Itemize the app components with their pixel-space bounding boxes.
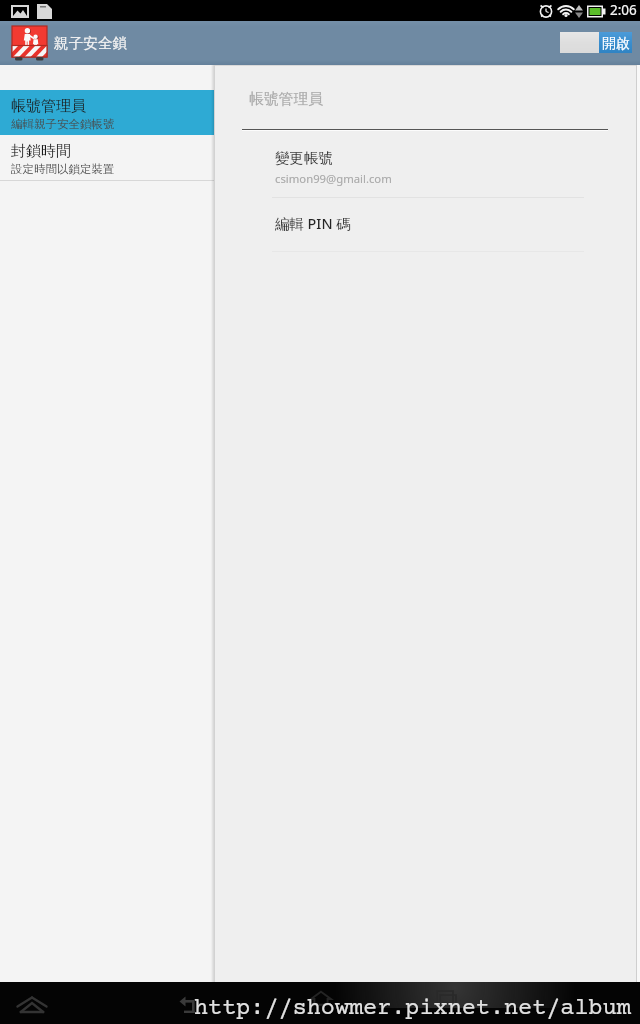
- other: App icon: [12, 25, 47, 61]
- button[interactable]: 開啟: [560, 32, 632, 53]
- staticText: 變更帳號: [275, 149, 333, 167]
- staticText: 親子安全鎖: [54, 34, 127, 52]
- staticText: 編輯 PIN 碼: [275, 214, 351, 234]
- staticText: 帳號管理員: [11, 97, 86, 116]
- button[interactable]: 封鎖時間: [0, 135, 214, 180]
- staticText: csimon99@gmail.com: [275, 171, 392, 186]
- button[interactable]: 帳號管理員: [0, 90, 214, 135]
- staticText: 設定時間以鎖定裝置: [11, 162, 115, 176]
- button[interactable]: Home: [17, 997, 47, 1013]
- staticText: http://showmer.pixnet.net/album: [194, 996, 631, 1022]
- staticText: 開啟: [602, 35, 630, 52]
- staticText: 2:06: [610, 1, 637, 19]
- button[interactable]: Recent apps: [436, 990, 460, 1007]
- staticText: 編輯親子安全鎖帳號: [11, 117, 115, 131]
- button[interactable]: Back: [179, 996, 196, 1016]
- staticText: 帳號管理員: [249, 90, 323, 109]
- button[interactable]: 編輯 PIN 碼: [214, 198, 640, 252]
- button[interactable]: Home: [310, 989, 332, 1007]
- staticText: 封鎖時間: [11, 142, 71, 161]
- button[interactable]: 變更帳號: [214, 131, 640, 198]
